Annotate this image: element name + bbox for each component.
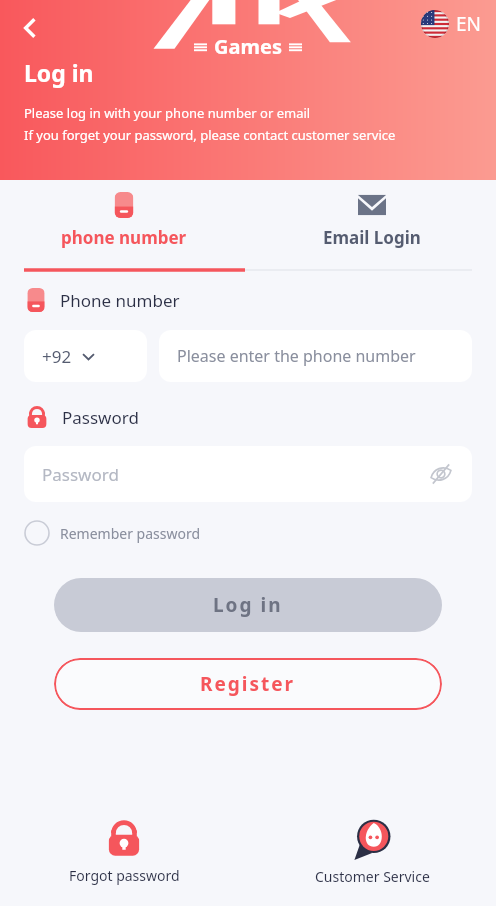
staticText: Password (62, 406, 139, 429)
button[interactable]: +92 (24, 330, 147, 382)
button[interactable]: Forgot password (0, 813, 248, 889)
staticText: phone number (61, 226, 187, 249)
button[interactable]: Back (8, 6, 52, 50)
staticText: Register (200, 671, 296, 697)
staticText: Games (214, 33, 282, 60)
staticText: Customer Service (315, 867, 430, 886)
button[interactable]: Please enter the phone number (159, 330, 472, 382)
button[interactable]: Log in (54, 578, 442, 632)
button[interactable]: phone number (0, 180, 248, 272)
staticText: Phone number (60, 289, 180, 312)
staticText: Log in (24, 57, 94, 88)
staticText: Password (42, 463, 119, 486)
button[interactable]: Register (54, 658, 442, 710)
button[interactable]: Customer Service (248, 813, 496, 890)
staticText: Log in (213, 592, 283, 618)
staticText: Please log in with your phone number or … (24, 104, 311, 122)
staticText: +92 (42, 345, 72, 368)
staticText: Email Login (323, 226, 421, 249)
button[interactable]: Language EN (421, 10, 482, 38)
staticText: Please enter the phone number (177, 345, 416, 367)
staticText: If you forget your password, please cont… (24, 126, 396, 144)
button[interactable]: Email Login (248, 180, 496, 272)
button[interactable]: Password (24, 446, 472, 502)
button[interactable]: Remember password (22, 516, 207, 550)
staticText: EN (456, 11, 482, 37)
staticText: Forgot password (69, 866, 180, 885)
button[interactable]: Show password (424, 457, 458, 491)
staticText: Remember password (60, 524, 201, 543)
